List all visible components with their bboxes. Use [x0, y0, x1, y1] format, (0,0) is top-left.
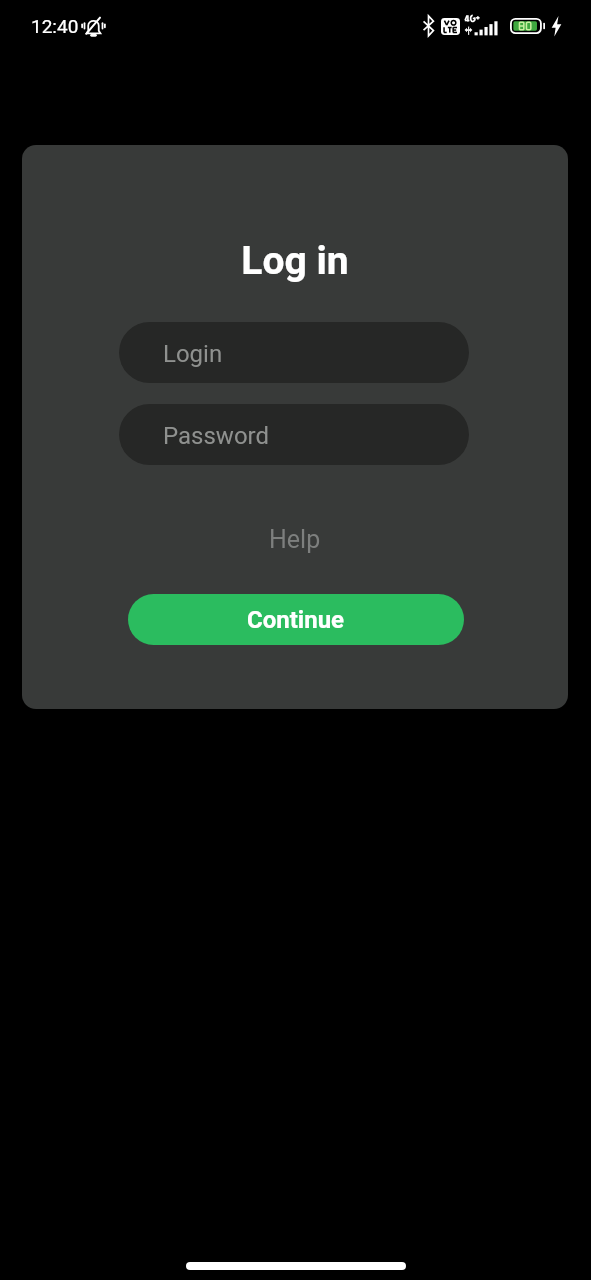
staticText: Login	[163, 340, 223, 368]
other: Bluetooth on	[422, 14, 435, 37]
other: Battery 80 percent	[510, 18, 545, 34]
staticText: Help	[269, 525, 321, 554]
staticText: 12:40	[31, 15, 79, 37]
button[interactable]: Password	[119, 404, 469, 465]
staticText: Log in	[241, 238, 349, 284]
button[interactable]: Login	[119, 322, 469, 383]
staticText: Password	[163, 422, 270, 450]
other: Charging	[551, 15, 562, 37]
staticText: Continue	[247, 606, 345, 634]
other: 4G+ signal, four bars	[464, 14, 503, 36]
button[interactable]: Continue	[128, 594, 464, 645]
other: VoLTE	[441, 18, 460, 35]
other: Ringer silent, vibrate	[81, 16, 106, 37]
button[interactable]: Help	[255, 520, 335, 559]
